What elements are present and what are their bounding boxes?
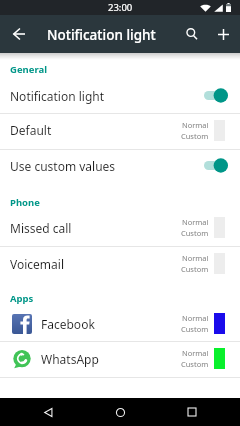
button[interactable]: Use custom values	[0, 149, 240, 182]
button[interactable]: Recent apps	[168, 398, 216, 426]
staticText: Normal	[182, 217, 209, 227]
staticText: Custom	[181, 131, 209, 141]
staticText: General	[10, 63, 47, 76]
staticText: Apps	[10, 292, 34, 305]
button[interactable]: Notification light	[0, 79, 240, 112]
button[interactable]: Navigate up	[2, 15, 36, 53]
button[interactable]: Search	[178, 15, 206, 53]
staticText: Default	[10, 122, 181, 138]
button[interactable]: Voicemail	[0, 247, 240, 280]
staticText: Notification light	[10, 88, 204, 104]
staticText: Facebook	[41, 316, 181, 332]
button[interactable]: Home	[96, 398, 144, 426]
button[interactable]: WhatsApp	[0, 342, 240, 375]
staticText: Normal	[182, 313, 209, 323]
staticText: Missed call	[10, 220, 181, 236]
staticText: 23:00	[108, 1, 133, 14]
staticText: Normal	[182, 253, 209, 263]
staticText: Normal	[182, 120, 209, 130]
staticText: Use custom values	[10, 158, 204, 174]
staticText: Custom	[181, 228, 209, 238]
button[interactable]: Add	[209, 15, 237, 53]
button[interactable]: Back	[24, 398, 72, 426]
staticText: Voicemail	[10, 256, 181, 272]
button[interactable]: Default	[0, 113, 240, 147]
button[interactable]: Facebook	[0, 307, 240, 340]
staticText: Phone	[10, 196, 40, 209]
staticText: Notification light	[47, 26, 156, 44]
staticText: Custom	[181, 324, 209, 334]
staticText: Custom	[181, 359, 209, 369]
button[interactable]: Missed call	[0, 211, 240, 244]
staticText: Normal	[182, 348, 209, 358]
staticText: Custom	[181, 264, 209, 274]
staticText: WhatsApp	[41, 351, 181, 367]
